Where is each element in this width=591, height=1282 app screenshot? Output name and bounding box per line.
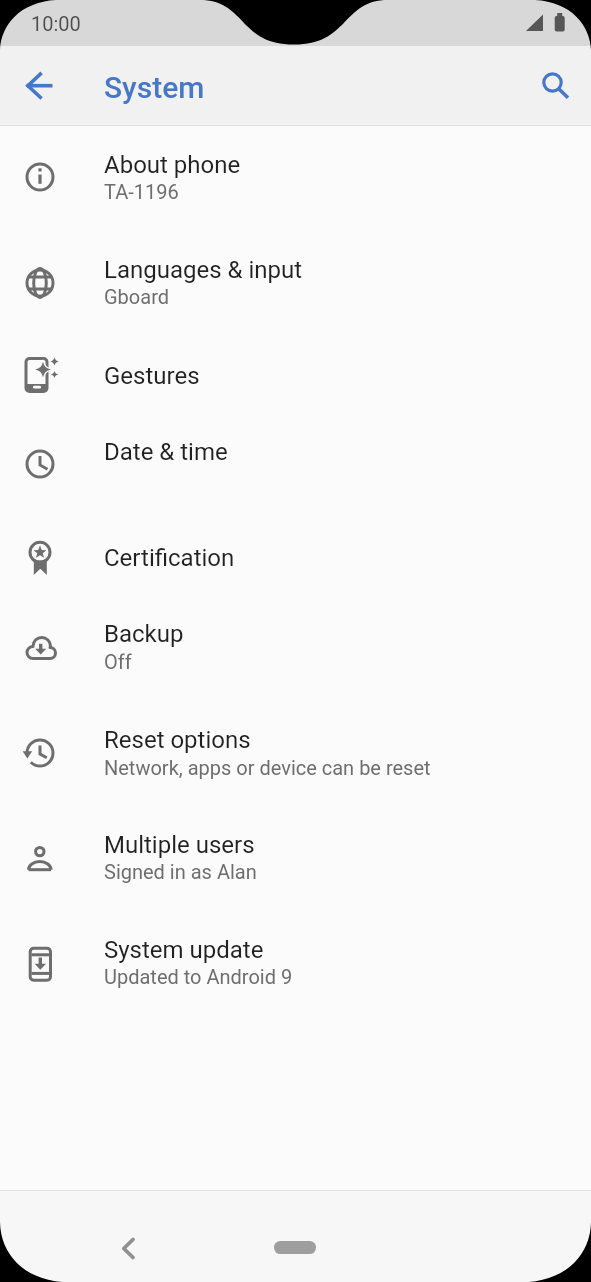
button[interactable]: [0, 909, 591, 1014]
staticText: Off: [104, 650, 132, 673]
staticText: Gestures: [104, 362, 200, 390]
staticText: System update: [104, 936, 264, 964]
staticText: Network, apps or device can be reset: [104, 756, 431, 779]
staticText: Multiple users: [104, 831, 255, 859]
button[interactable]: [274, 1241, 316, 1254]
button[interactable]: [0, 699, 591, 804]
button[interactable]: [0, 230, 591, 335]
staticText: Languages & input: [104, 256, 303, 284]
button[interactable]: [0, 125, 591, 230]
button[interactable]: [530, 60, 578, 108]
staticText: Backup: [104, 620, 184, 648]
button[interactable]: [104, 1224, 152, 1272]
button[interactable]: [0, 804, 591, 909]
staticText: Updated to Android 9: [104, 965, 293, 988]
button[interactable]: [0, 517, 591, 594]
staticText: Signed in as Alan: [104, 860, 257, 883]
staticText: TA-1196: [104, 180, 179, 203]
button[interactable]: [0, 335, 591, 412]
staticText: Date & time: [104, 438, 228, 466]
staticText: System: [104, 70, 205, 105]
button[interactable]: [0, 594, 591, 699]
button[interactable]: [0, 412, 591, 517]
button[interactable]: [17, 62, 65, 110]
staticText: 10:00: [31, 12, 81, 35]
staticText: Gboard: [104, 285, 170, 308]
staticText: About phone: [104, 151, 241, 179]
staticText: Certification: [104, 544, 235, 572]
staticText: Reset options: [104, 726, 251, 754]
